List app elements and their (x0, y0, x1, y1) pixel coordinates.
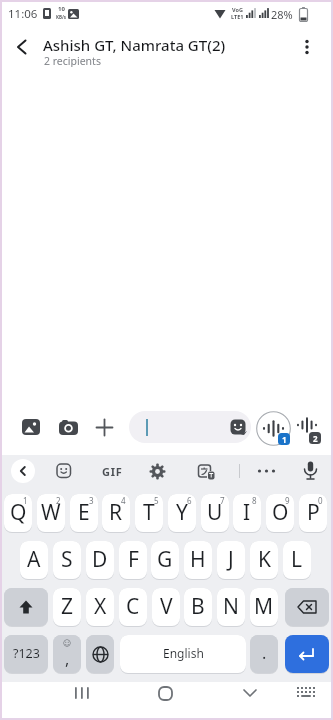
button[interactable] (11, 459, 35, 483)
staticText: F (128, 545, 139, 574)
staticText: O (272, 498, 289, 527)
staticText: 5 (154, 495, 159, 506)
button[interactable]: G (151, 541, 179, 579)
button[interactable] (59, 420, 78, 435)
button[interactable] (15, 39, 29, 55)
button[interactable] (297, 687, 317, 700)
button[interactable]: . (250, 635, 278, 673)
button[interactable]: I (233, 494, 261, 532)
button[interactable]: Q (4, 494, 32, 532)
button[interactable] (303, 461, 318, 481)
staticText: L (291, 545, 303, 574)
button[interactable]: A (20, 541, 48, 579)
button[interactable]: E (70, 494, 98, 532)
button[interactable]: P (299, 494, 327, 532)
button[interactable]: L (283, 541, 311, 579)
button[interactable]: R (102, 494, 130, 532)
button[interactable]: C (119, 588, 147, 626)
staticText: K (258, 545, 271, 574)
button[interactable]: W (37, 494, 65, 532)
staticText: 4 (121, 495, 126, 506)
button[interactable] (295, 413, 319, 437)
button[interactable]: Y (168, 494, 196, 532)
button[interactable]: K (250, 541, 278, 579)
button[interactable] (230, 419, 247, 435)
button[interactable] (96, 419, 113, 436)
staticText: D (92, 545, 108, 574)
button[interactable]: X (86, 588, 114, 626)
staticText: V (160, 592, 173, 621)
button[interactable] (22, 419, 40, 435)
staticText: A (27, 545, 41, 574)
staticText: G (157, 545, 173, 574)
staticText: X (94, 592, 107, 621)
button[interactable] (4, 588, 48, 626)
staticText: R (109, 498, 123, 527)
staticText: 10 (58, 5, 65, 13)
staticText: M (254, 592, 274, 621)
button[interactable]: Z (53, 588, 81, 626)
button[interactable] (74, 687, 90, 699)
staticText: 9 (285, 495, 290, 506)
button[interactable]: H (184, 541, 212, 579)
staticText: GIF (102, 464, 123, 478)
staticText: N (223, 592, 239, 621)
button[interactable]: ?123 (4, 635, 48, 673)
button[interactable] (300, 39, 314, 55)
button[interactable]: English (120, 635, 246, 673)
staticText: H (190, 545, 206, 574)
button[interactable] (129, 411, 251, 443)
staticText: English (163, 645, 204, 661)
staticText: I (243, 498, 251, 527)
button[interactable] (86, 635, 114, 673)
button[interactable]: D (86, 541, 114, 579)
button[interactable] (198, 463, 215, 480)
button[interactable]: O (266, 494, 294, 532)
staticText: , (65, 648, 70, 670)
staticText: T (143, 498, 155, 527)
button[interactable] (256, 411, 291, 446)
button[interactable] (285, 588, 329, 626)
staticText: ?123 (13, 645, 40, 662)
button[interactable] (257, 465, 276, 477)
staticText: 28% (271, 7, 293, 22)
staticText: 1 (23, 495, 28, 506)
staticText: Ashish GT, Namrata GT(2) (43, 35, 226, 55)
button[interactable]: B (184, 588, 212, 626)
staticText: 2 (56, 495, 61, 506)
button[interactable]: U (201, 494, 229, 532)
staticText: 1 (282, 434, 287, 445)
staticText: 2 (313, 433, 318, 444)
staticText: 3 (89, 495, 94, 506)
button[interactable] (56, 463, 72, 479)
button[interactable] (149, 463, 166, 480)
staticText: E (78, 498, 90, 527)
button[interactable]: T (135, 494, 163, 532)
staticText: 7 (220, 495, 225, 506)
button[interactable] (243, 689, 257, 697)
button[interactable]: ☺ (53, 635, 81, 673)
button[interactable]: GIF (99, 464, 125, 478)
staticText: C (126, 592, 140, 621)
staticText: ☺ (63, 639, 72, 648)
staticText: P (307, 498, 320, 527)
staticText: 0 (318, 495, 323, 506)
staticText: LTE1 (231, 13, 244, 20)
staticText: W (41, 498, 61, 527)
button[interactable] (158, 686, 173, 701)
staticText: VoG (232, 6, 243, 13)
button[interactable]: M (250, 588, 278, 626)
button[interactable] (285, 635, 329, 673)
staticText: U (207, 498, 223, 527)
staticText: Q (10, 498, 27, 527)
staticText: B (191, 592, 205, 621)
button[interactable]: V (152, 588, 180, 626)
staticText: 11:06 (8, 6, 38, 22)
button[interactable]: N (217, 588, 245, 626)
staticText: KB/s (56, 14, 67, 20)
staticText: 6 (187, 495, 192, 506)
button[interactable]: S (53, 541, 81, 579)
staticText: S (61, 545, 73, 574)
button[interactable]: F (119, 541, 147, 579)
button[interactable]: J (217, 541, 245, 579)
